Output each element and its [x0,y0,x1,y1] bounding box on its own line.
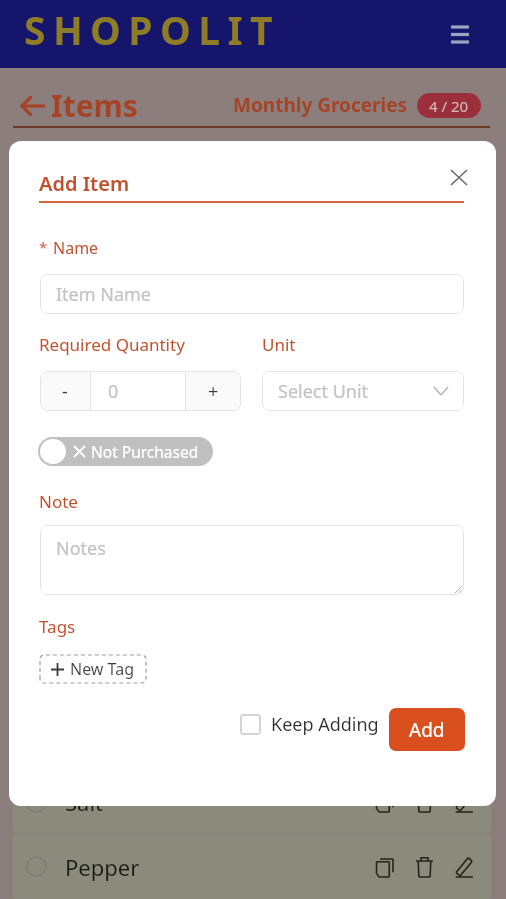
staticText: Add Item [39,170,130,197]
button[interactable]: Copy [371,789,397,815]
staticText: Not Purchased [91,441,199,462]
button[interactable]: New Tag [40,655,146,683]
staticText: Items [51,85,138,126]
button[interactable]: Add [389,708,465,751]
staticText: Keep Adding [271,712,379,737]
button[interactable]: Close [443,161,475,193]
button[interactable]: Delete [411,854,437,880]
staticText: Name [53,237,99,259]
button[interactable]: Edit [451,854,477,880]
staticText: Item Name [56,282,152,307]
staticText: New Tag [70,658,135,680]
button[interactable]: Select Unit [262,371,464,411]
button[interactable]: Keep Adding [240,703,379,745]
button[interactable]: Not Purchased [38,437,213,466]
staticText: + [208,379,219,404]
button[interactable]: Delete [411,789,437,815]
button[interactable]: - [40,371,90,411]
staticText: 0 [108,379,119,404]
staticText: Required Quantity [39,333,185,356]
staticText: Tags [39,615,76,638]
button[interactable]: Menu [443,17,477,51]
staticText: Notes [56,536,106,561]
button[interactable]: Salt [13,771,491,833]
staticText: Note [39,490,78,513]
staticText: Add [409,717,445,743]
staticText: SHOPOLIT [24,3,280,56]
staticText: Monthly Groceries [233,92,408,118]
button[interactable]: Copy [371,854,397,880]
staticText: Select Unit [278,379,369,404]
button[interactable]: Items [20,85,138,126]
staticText: * [39,237,48,257]
staticText: Pepper [65,852,140,882]
button[interactable]: Notes [40,525,464,595]
button[interactable]: Pepper [13,834,491,899]
button[interactable]: Item Name [40,274,464,314]
button[interactable]: + [186,371,241,411]
staticText: - [62,379,68,404]
button[interactable]: Edit [451,789,477,815]
staticText: Unit [262,333,296,356]
staticText: Salt [65,787,104,817]
staticText: 4 / 20 [429,96,469,116]
